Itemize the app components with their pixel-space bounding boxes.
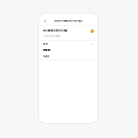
button[interactable]: High	[38, 53, 98, 60]
staticText: Low	[42, 42, 47, 45]
staticText: Noise reduction level	[42, 29, 67, 32]
button[interactable]: Back	[43, 18, 47, 23]
staticText: Medium	[42, 49, 50, 51]
button[interactable]: Low	[38, 41, 98, 47]
staticText: High	[42, 55, 49, 58]
staticText: Noise Reduction Settings	[54, 20, 82, 22]
staticText: Filtering strength	[42, 35, 60, 38]
button[interactable]: Medium	[38, 47, 98, 53]
